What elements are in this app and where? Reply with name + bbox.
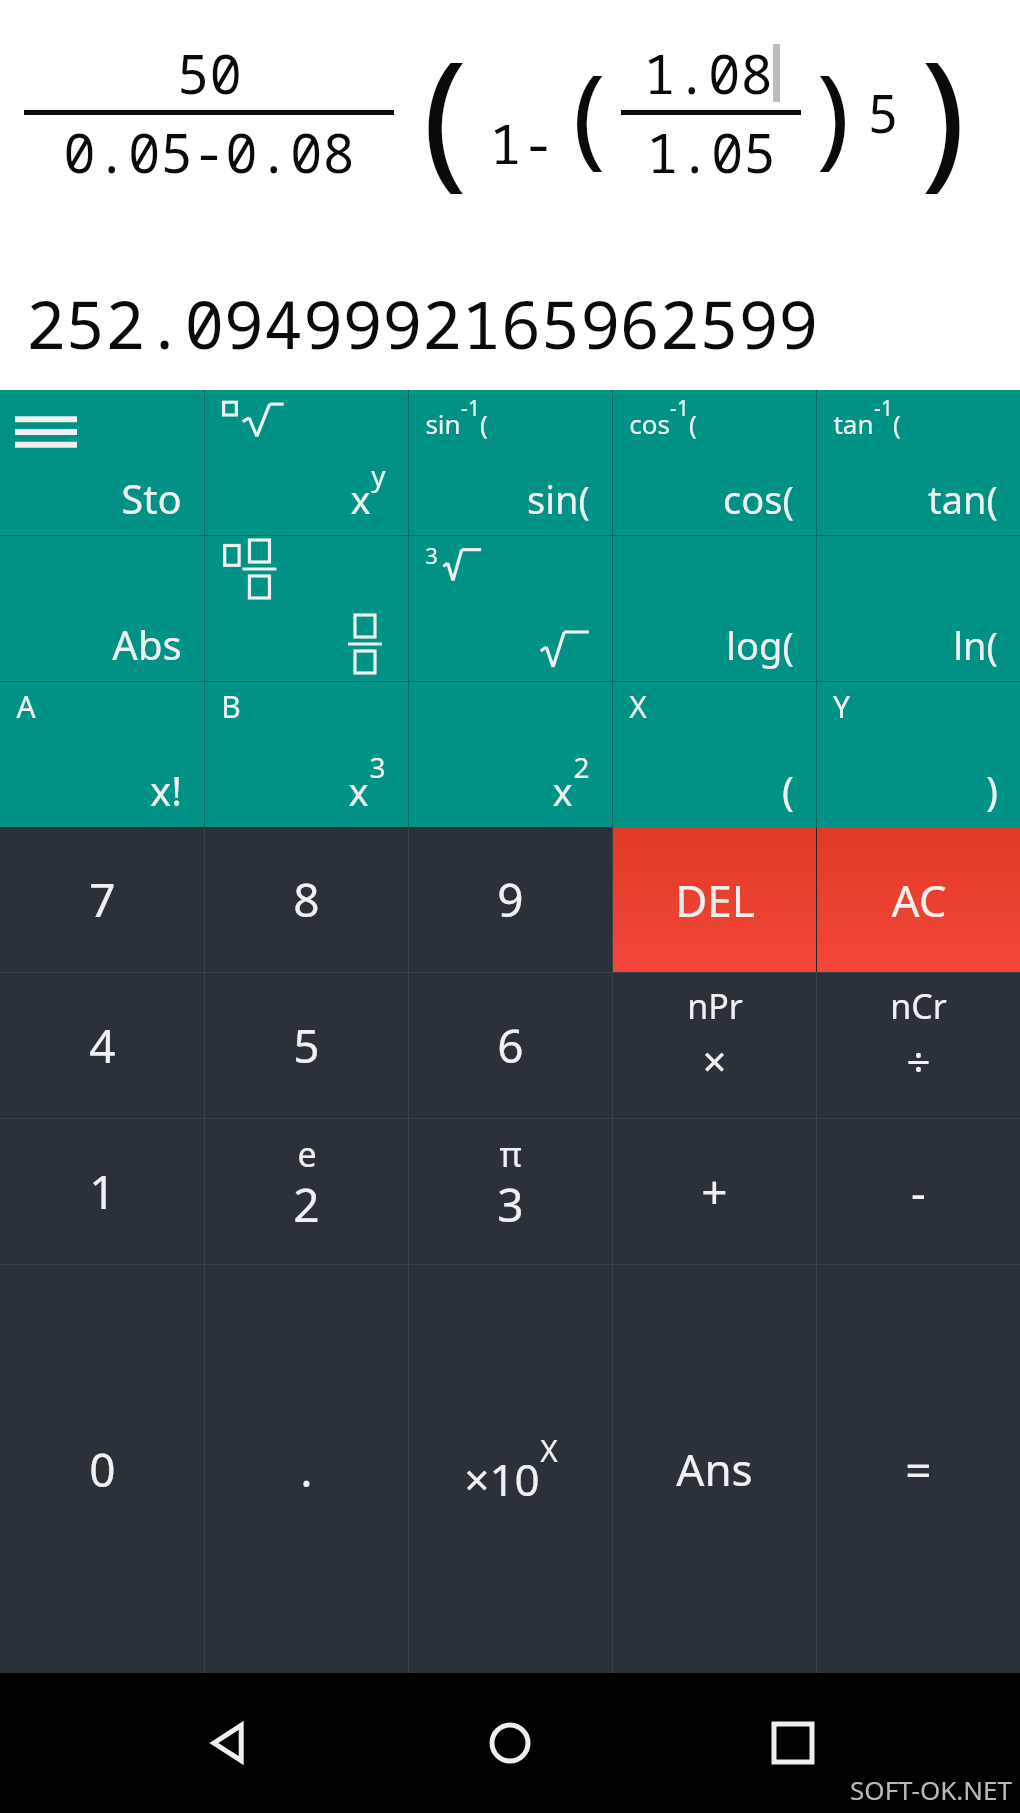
- button[interactable]: =: [817, 1265, 1020, 1673]
- staticText: -1: [874, 394, 893, 423]
- staticText: B: [221, 686, 241, 727]
- staticText: ÷: [906, 1032, 931, 1089]
- staticText: 3: [425, 540, 438, 570]
- staticText: cos(: [723, 473, 794, 525]
- staticText: A: [16, 686, 36, 727]
- staticText: sin: [425, 406, 461, 441]
- staticText: =: [905, 1438, 932, 1501]
- staticText: nPr: [687, 983, 743, 1029]
- button[interactable]: Abs: [0, 536, 204, 681]
- staticText: -: [522, 106, 555, 180]
- button[interactable]: Recents: [738, 1688, 848, 1798]
- staticText: tan: [833, 406, 874, 441]
- staticText: 5: [293, 1014, 320, 1077]
- button[interactable]: sin: [409, 390, 612, 535]
- staticText: 2: [573, 748, 590, 786]
- button[interactable]: 5: [205, 973, 408, 1118]
- button[interactable]: 8: [205, 827, 408, 972]
- button[interactable]: B: [205, 682, 408, 827]
- button[interactable]: Ans: [613, 1265, 816, 1673]
- staticText: tan(: [928, 473, 998, 525]
- button[interactable]: -: [817, 1119, 1020, 1264]
- button[interactable]: A: [0, 682, 204, 827]
- button[interactable]: 6: [409, 973, 612, 1118]
- button[interactable]: Home: [455, 1688, 565, 1798]
- button[interactable]: 50: [0, 0, 1020, 390]
- button[interactable]: +: [613, 1119, 816, 1264]
- staticText: 1: [489, 106, 522, 180]
- staticText: X: [540, 1430, 558, 1471]
- staticText: 0: [89, 1438, 116, 1501]
- staticText: x!: [150, 763, 182, 817]
- button[interactable]: [205, 536, 408, 681]
- staticText: 50: [177, 36, 242, 110]
- staticText: SOFT-OK.NET: [850, 1772, 1012, 1807]
- staticText: AC: [891, 870, 947, 930]
- staticText: .: [300, 1438, 313, 1501]
- staticText: Y: [833, 686, 850, 727]
- staticText: ×10: [464, 1449, 540, 1509]
- staticText: y: [371, 456, 386, 494]
- staticText: (: [689, 406, 697, 441]
- button[interactable]: DEL: [613, 827, 816, 972]
- staticText: 252.0949992165962599: [26, 278, 818, 368]
- button[interactable]: tan: [817, 390, 1020, 535]
- staticText: -: [911, 1160, 926, 1223]
- staticText: ln(: [953, 619, 998, 671]
- button[interactable]: ×10: [409, 1265, 612, 1673]
- button[interactable]: X: [613, 682, 816, 827]
- staticText: 1.08: [643, 36, 773, 110]
- staticText: 2: [293, 1173, 320, 1236]
- staticText: e: [297, 1131, 317, 1177]
- staticText: Abs: [112, 617, 182, 671]
- staticText: x: [348, 765, 369, 817]
- staticText: 3: [369, 748, 386, 786]
- button[interactable]: x: [205, 390, 408, 535]
- staticText: (: [893, 406, 901, 441]
- button[interactable]: nPr: [613, 973, 816, 1118]
- button[interactable]: x: [409, 682, 612, 827]
- staticText: Sto: [121, 471, 182, 525]
- button[interactable]: e: [205, 1119, 408, 1264]
- button[interactable]: log(: [613, 536, 816, 681]
- button[interactable]: 9: [409, 827, 612, 972]
- staticText: -1: [461, 394, 480, 423]
- staticText: 8: [293, 868, 320, 931]
- staticText: (: [782, 763, 794, 817]
- staticText: 3: [497, 1173, 524, 1236]
- staticText: (: [480, 406, 488, 441]
- button[interactable]: 1: [0, 1119, 204, 1264]
- staticText: Ans: [676, 1439, 753, 1499]
- button[interactable]: AC: [817, 827, 1020, 972]
- staticText: ×: [702, 1032, 727, 1089]
- button[interactable]: 4: [0, 973, 204, 1118]
- button[interactable]: ln(: [817, 536, 1020, 681]
- staticText: 7: [89, 868, 116, 931]
- button[interactable]: 7: [0, 827, 204, 972]
- button[interactable]: cos: [613, 390, 816, 535]
- staticText: ): [899, 10, 990, 214]
- staticText: cos: [629, 406, 670, 441]
- staticText: x: [350, 473, 371, 525]
- button[interactable]: π: [409, 1119, 612, 1264]
- staticText: (: [398, 10, 489, 214]
- staticText: -1: [670, 394, 689, 423]
- staticText: x: [552, 765, 573, 817]
- staticText: 9: [497, 868, 524, 931]
- button[interactable]: 0: [0, 1265, 204, 1673]
- staticText: +: [701, 1160, 728, 1223]
- staticText: 4: [89, 1014, 116, 1077]
- button[interactable]: .: [205, 1265, 408, 1673]
- button[interactable]: 3: [409, 536, 612, 681]
- button[interactable]: Back: [173, 1688, 283, 1798]
- staticText: ): [801, 37, 867, 187]
- staticText: nCr: [890, 983, 947, 1029]
- staticText: 0.05-0.08: [63, 115, 355, 189]
- button[interactable]: nCr: [817, 973, 1020, 1118]
- button[interactable]: Y: [817, 682, 1020, 827]
- staticText: DEL: [675, 870, 755, 930]
- button[interactable]: Menu: [0, 390, 204, 535]
- staticText: sin(: [527, 473, 590, 525]
- staticText: 6: [497, 1014, 524, 1077]
- staticText: 5: [867, 77, 899, 148]
